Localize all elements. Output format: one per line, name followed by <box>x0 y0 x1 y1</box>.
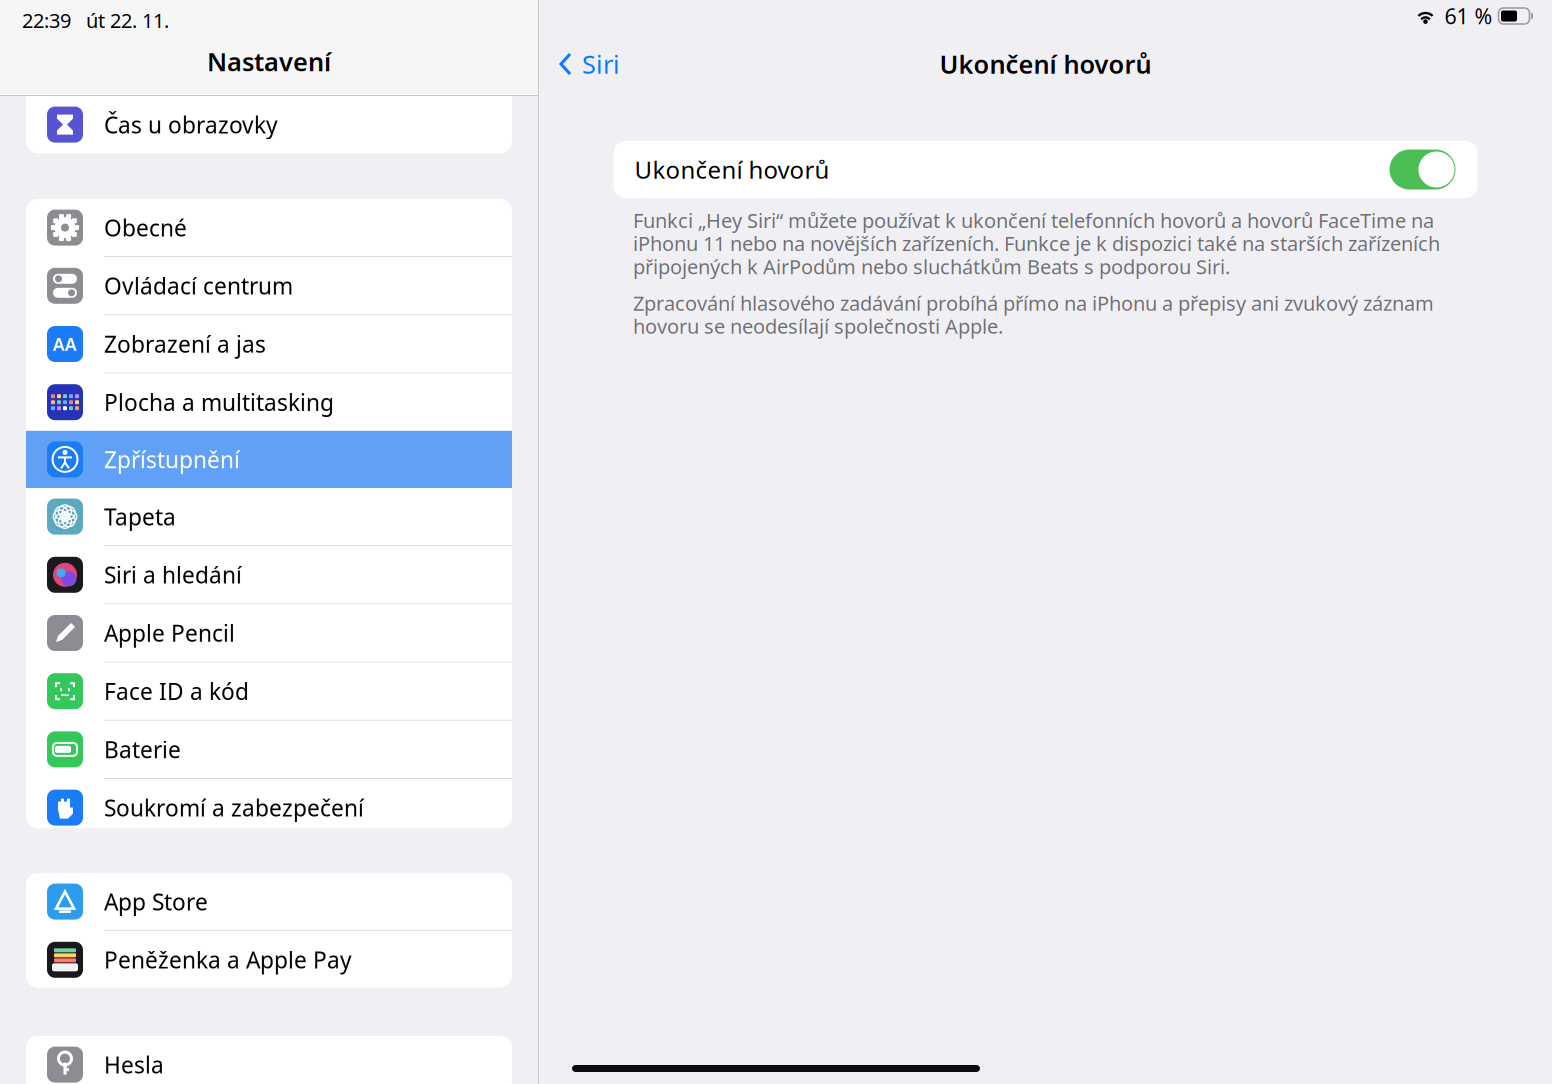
staticText: Peněženka a Apple Pay <box>104 945 352 975</box>
button[interactable]: Siri <box>539 39 628 89</box>
staticText: Tapeta <box>104 501 176 532</box>
button[interactable]: Ukončení hovorů <box>1389 149 1455 189</box>
staticText: Soukromí a zabezpečení <box>104 792 364 823</box>
button[interactable]: Apple Pencil <box>26 604 512 662</box>
staticText: Ovládací centrum <box>104 271 293 301</box>
button[interactable]: Siri a hledání <box>26 546 512 603</box>
staticText: Siri <box>582 47 620 81</box>
button[interactable]: Čas u obrazovky <box>26 96 512 153</box>
button[interactable]: Plocha a multitasking <box>26 374 512 431</box>
button[interactable]: Ovládací centrum <box>26 257 512 314</box>
button[interactable]: App Store <box>26 873 512 930</box>
staticText: AA <box>53 332 77 355</box>
button[interactable]: Obecné <box>26 199 512 256</box>
staticText: Hesla <box>104 1049 164 1080</box>
button[interactable]: Soukromí a zabezpečení <box>26 779 512 836</box>
button[interactable]: Zpřístupnění <box>26 431 512 488</box>
button[interactable]: Hesla <box>26 1036 512 1084</box>
staticText: Plocha a multitasking <box>104 387 334 417</box>
staticText: Zpracování hlasového zadávání probíhá př… <box>633 290 1434 339</box>
staticText: Apple Pencil <box>104 618 235 648</box>
button[interactable]: Peněženka a Apple Pay <box>26 931 512 988</box>
staticText: Nastavení <box>207 45 331 78</box>
staticText: Obecné <box>104 212 187 243</box>
staticText: Baterie <box>104 734 181 764</box>
staticText: App Store <box>104 886 208 917</box>
button[interactable]: Tapeta <box>26 488 512 545</box>
staticText: Zobrazení a jas <box>104 329 266 359</box>
staticText: 61 % <box>1444 2 1492 30</box>
staticText: Čas u obrazovky <box>104 109 278 140</box>
button[interactable]: Baterie <box>26 721 512 778</box>
button[interactable]: Face ID a kód <box>26 663 512 720</box>
staticText: Zpřístupnění <box>104 444 240 474</box>
staticText: 22:39 út 22. 11. <box>22 7 169 34</box>
staticText: Ukončení hovorů <box>634 154 829 185</box>
staticText: Face ID a kód <box>104 676 249 706</box>
staticText: Ukončení hovorů <box>939 47 1151 81</box>
button[interactable]: AA <box>26 315 512 373</box>
staticText: Funkci „Hey Siri“ můžete používat k ukon… <box>633 207 1440 280</box>
staticText: Siri a hledání <box>104 560 242 590</box>
